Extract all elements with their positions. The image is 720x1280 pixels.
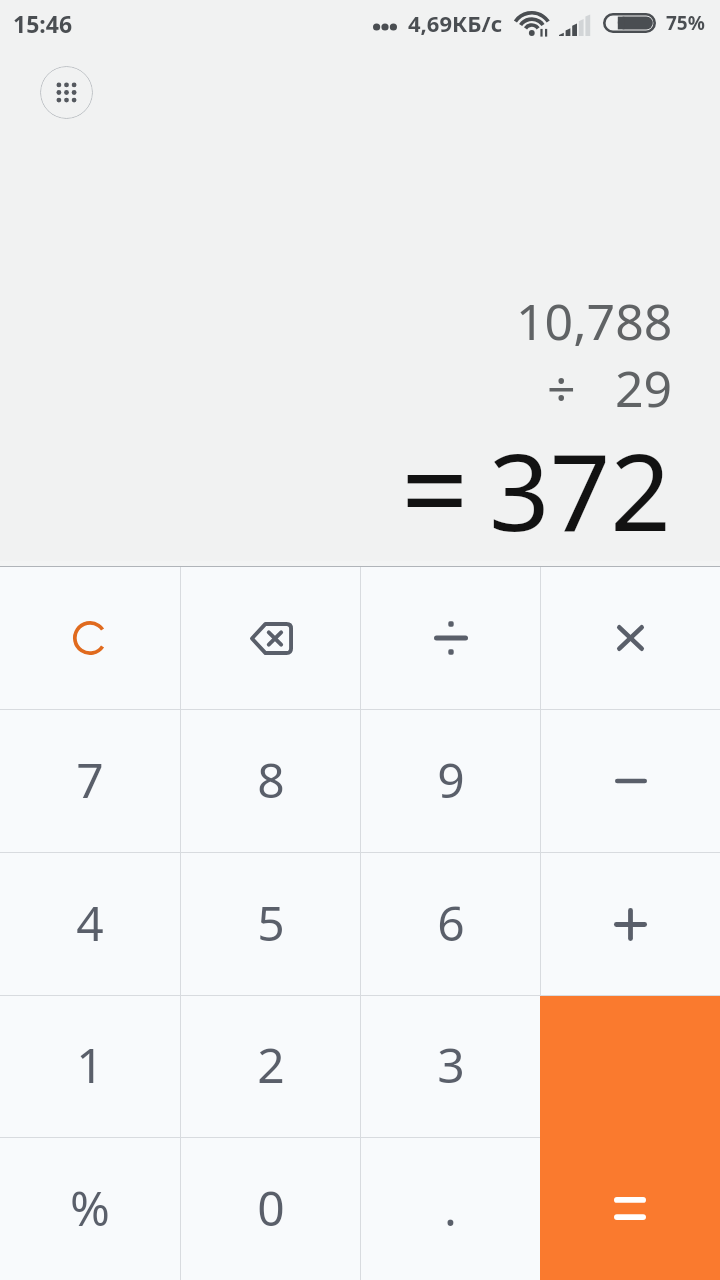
staticText: 7	[76, 747, 104, 812]
button[interactable]: 9	[361, 710, 540, 852]
button[interactable]: Divide	[361, 567, 540, 709]
button[interactable]: 2	[181, 996, 360, 1137]
staticText: 15:46	[13, 8, 73, 39]
button[interactable]: Menu	[40, 66, 93, 119]
staticText: ÷	[547, 354, 576, 422]
button[interactable]: 1	[0, 996, 180, 1137]
button[interactable]: 0	[181, 1138, 360, 1280]
button[interactable]: 6	[361, 853, 540, 995]
staticText: 6	[437, 890, 465, 955]
button[interactable]: 3	[361, 996, 540, 1137]
staticText: 4	[76, 890, 104, 955]
staticText: 372	[489, 418, 671, 562]
button[interactable]: Equals	[540, 996, 720, 1280]
button[interactable]: %	[0, 1138, 180, 1280]
button[interactable]: Clear	[0, 567, 180, 709]
staticText: 5	[257, 890, 285, 955]
button[interactable]: .	[361, 1138, 540, 1280]
button[interactable]: 5	[181, 853, 360, 995]
staticText: 75%	[666, 10, 705, 36]
button[interactable]: Minus	[541, 710, 720, 852]
button[interactable]: Backspace	[181, 567, 360, 709]
staticText: .	[444, 1175, 457, 1240]
staticText: 9	[437, 747, 465, 812]
button[interactable]: 8	[181, 710, 360, 852]
staticText: 10,788	[516, 287, 673, 355]
staticText: 2	[257, 1032, 285, 1097]
staticText: =	[401, 407, 469, 568]
staticText: 1	[76, 1032, 104, 1097]
staticText: 4,69КБ/с	[408, 8, 503, 38]
button[interactable]: 4	[0, 853, 180, 995]
button[interactable]: Plus	[541, 853, 720, 995]
staticText: 8	[257, 747, 285, 812]
staticText: %	[70, 1175, 110, 1240]
button[interactable]: Multiply	[541, 567, 720, 709]
staticText: 3	[437, 1032, 465, 1097]
staticText: 29	[615, 354, 673, 422]
button[interactable]: 7	[0, 710, 180, 852]
staticText: 0	[257, 1175, 285, 1240]
